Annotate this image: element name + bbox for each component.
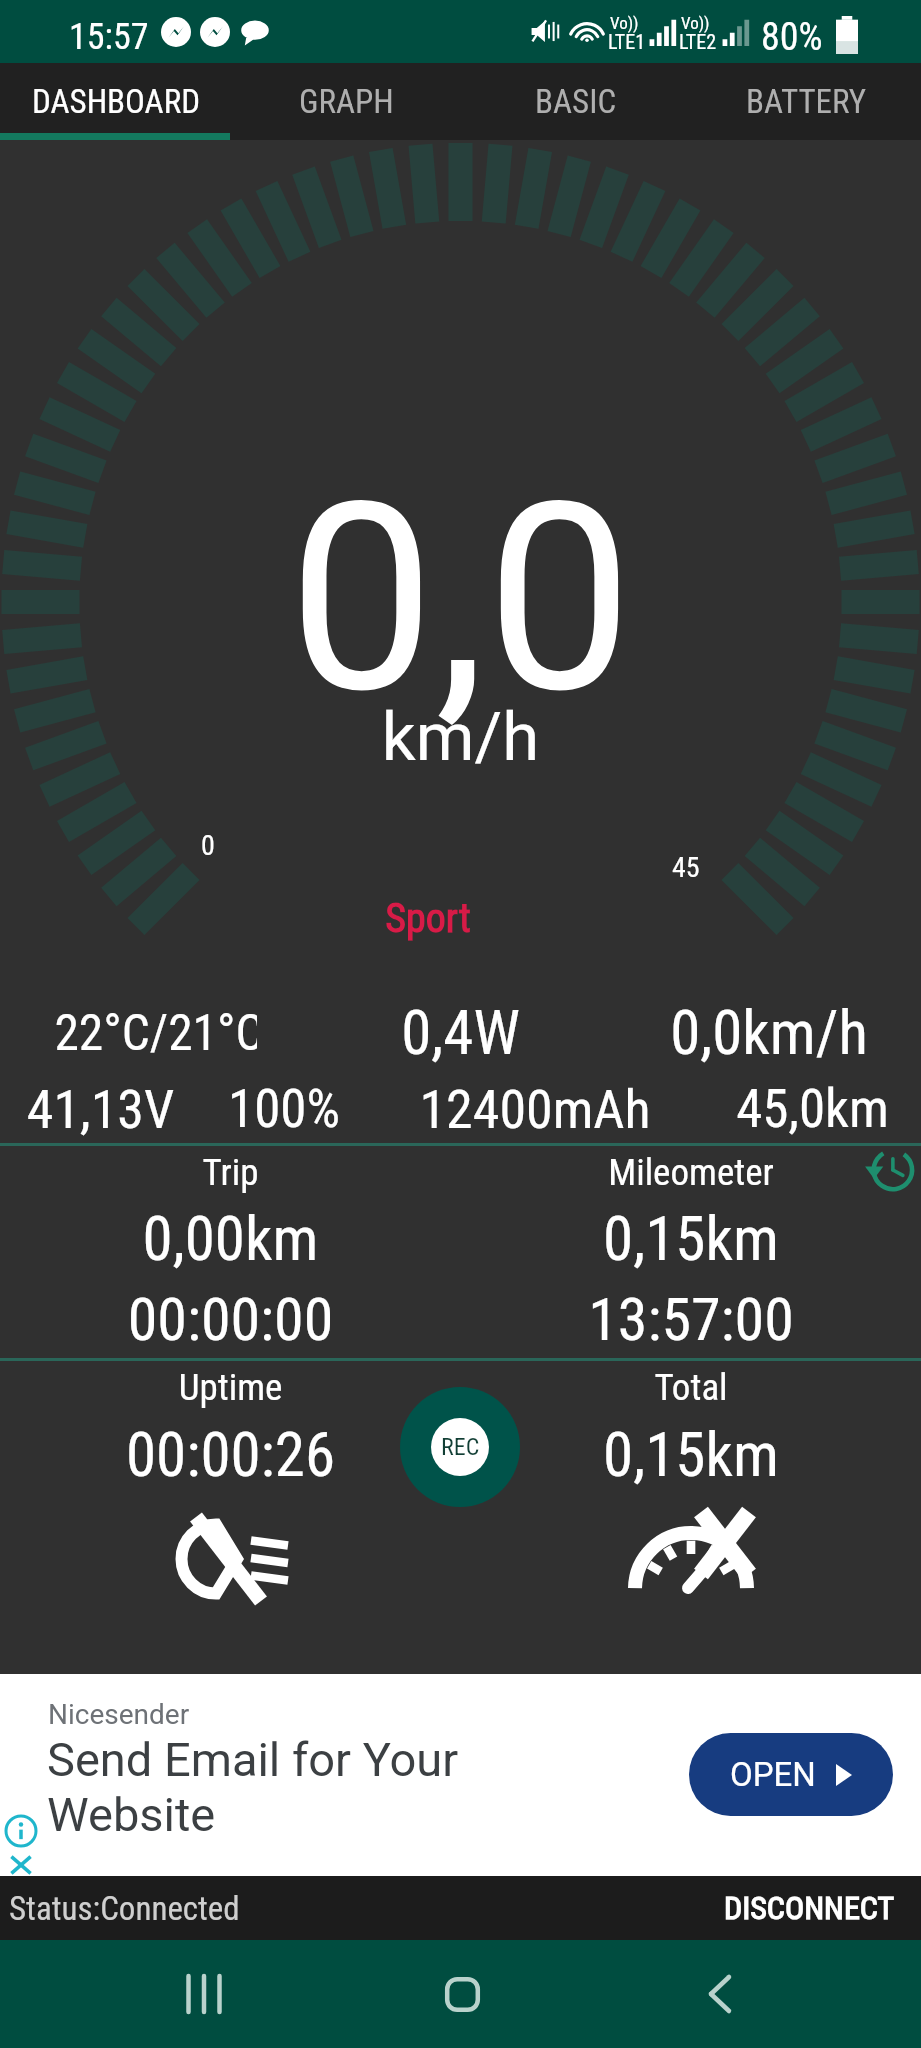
- staticText: LTE1: [608, 30, 646, 53]
- staticText: 0,15km: [461, 1419, 921, 1490]
- staticText: GRAPH: [299, 82, 394, 121]
- staticText: Status:Connected: [9, 1889, 240, 1928]
- staticText: 12400mAh: [380, 1078, 690, 1141]
- staticText: Send Email for Your Website: [47, 1732, 467, 1842]
- other: Close ad: [6, 1850, 36, 1880]
- staticText: Uptime: [0, 1366, 461, 1409]
- staticText: 0,15km: [461, 1203, 921, 1274]
- staticText: 100%: [194, 1078, 374, 1140]
- staticText: 0,00km: [0, 1203, 461, 1274]
- staticText: 45: [672, 851, 700, 884]
- staticText: Vo)): [610, 13, 639, 33]
- staticText: 41,13V: [0, 1078, 201, 1141]
- staticText: 15:57: [69, 16, 149, 58]
- staticText: 45,0km: [700, 1078, 921, 1140]
- staticText: 22°C/21°C: [54, 1004, 257, 1062]
- staticText: 13:57:00: [461, 1284, 921, 1354]
- staticText: BASIC: [535, 82, 617, 121]
- staticText: 00:00:00: [0, 1284, 461, 1354]
- staticText: Total: [461, 1366, 921, 1409]
- button[interactable]: BATTERY: [691, 63, 921, 140]
- staticText: Nicesender: [48, 1698, 190, 1731]
- button[interactable]: DASHBOARD: [0, 63, 231, 140]
- staticText: REC: [441, 1433, 480, 1461]
- staticText: 00:00:26: [0, 1419, 461, 1490]
- staticText: DASHBOARD: [32, 82, 200, 121]
- staticText: 80%: [761, 15, 823, 60]
- staticText: km/h: [0, 698, 921, 777]
- staticText: LTE2: [679, 30, 717, 53]
- staticText: 0,4W: [300, 997, 621, 1068]
- staticText: 0: [201, 829, 215, 862]
- staticText: OPEN: [730, 1755, 816, 1794]
- button[interactable]: Home: [408, 1940, 516, 2048]
- button[interactable]: BASIC: [461, 63, 691, 140]
- staticText: 0,0km/h: [619, 997, 919, 1068]
- button[interactable]: History: [866, 1146, 914, 1194]
- staticText: Mileometer: [461, 1151, 921, 1194]
- button[interactable]: GRAPH: [231, 63, 461, 140]
- staticText: BATTERY: [746, 82, 867, 121]
- button[interactable]: Back: [666, 1940, 774, 2048]
- staticText: Vo)): [681, 13, 710, 33]
- staticText: Sport: [320, 895, 536, 942]
- button[interactable]: Recent apps: [150, 1940, 258, 2048]
- staticText: Trip: [0, 1151, 461, 1194]
- staticText: 0,0: [0, 446, 921, 752]
- button[interactable]: OPEN: [689, 1733, 893, 1816]
- button[interactable]: DISCONNECT: [724, 1889, 895, 1927]
- other: Ad info: [4, 1814, 38, 1848]
- button[interactable]: Record trip: [400, 1387, 520, 1507]
